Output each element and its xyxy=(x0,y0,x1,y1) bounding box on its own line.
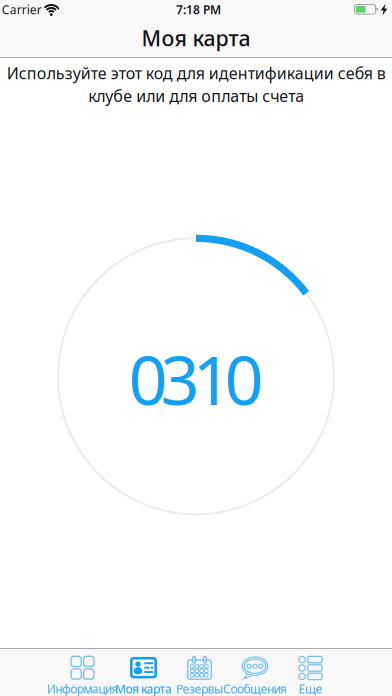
button[interactable]: Информация xyxy=(53,649,111,696)
button[interactable]: Моя карта xyxy=(114,649,172,696)
staticText: Моя карта xyxy=(115,681,172,696)
staticText: Информация xyxy=(47,681,118,696)
staticText: Carrier xyxy=(2,1,42,17)
staticText: Резервы xyxy=(176,681,223,696)
button[interactable]: Еще xyxy=(281,649,339,696)
staticText: 0310 xyxy=(128,333,263,424)
button[interactable]: Сообщения xyxy=(226,649,284,696)
staticText: Моя карта xyxy=(141,24,250,52)
button[interactable]: Резервы xyxy=(170,649,228,696)
staticText: Сообщения xyxy=(223,681,287,696)
staticText: Используйте этот код для идентификации с… xyxy=(6,62,385,106)
staticText: Еще xyxy=(298,681,322,696)
staticText: 7:18 PM xyxy=(176,1,221,17)
